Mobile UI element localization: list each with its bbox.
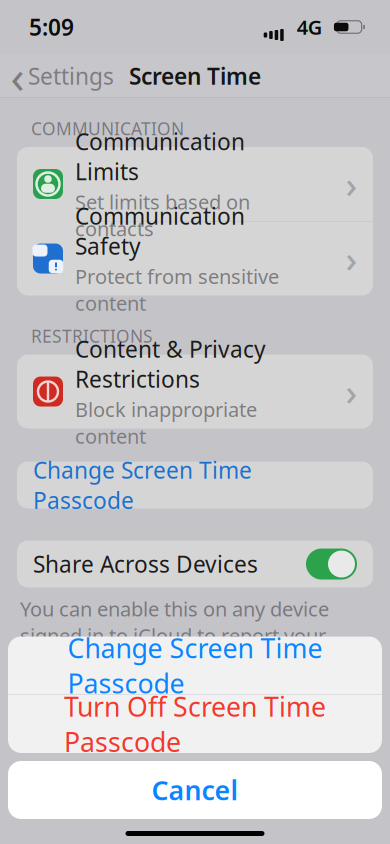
staticText: COMMUNICATION xyxy=(31,117,184,140)
staticText: Block inappropriate content xyxy=(75,396,257,449)
staticText: 4G xyxy=(297,14,323,40)
button[interactable]: Change Screen Time Passcode xyxy=(8,636,382,694)
button[interactable]: ‹ xyxy=(0,54,122,98)
button[interactable]: Cancel xyxy=(8,761,382,819)
staticText: › xyxy=(345,160,357,208)
staticText: › xyxy=(345,368,357,415)
staticText: Content & Privacy Restrictions xyxy=(75,334,266,394)
staticText: Protect from sensitive content xyxy=(75,263,279,316)
staticText: Share Across Devices xyxy=(33,549,258,579)
staticText: RESTRICTIONS xyxy=(31,324,153,347)
staticText: Cancel xyxy=(151,772,238,808)
button[interactable]: Communication Limits xyxy=(17,147,373,221)
staticText: Screen Time xyxy=(129,61,261,91)
staticText: ‹ xyxy=(10,46,24,106)
staticText: Set Up Screen Time for Family xyxy=(33,688,277,748)
button[interactable]: Communication Safety xyxy=(17,221,373,295)
staticText: Change Screen Time Passcode xyxy=(67,630,322,701)
staticText: Settings xyxy=(28,61,114,91)
staticText: Change Screen Time Passcode xyxy=(33,455,252,515)
staticText: Turn Off Screen Time Passcode xyxy=(64,689,326,759)
staticText: Communication Limits xyxy=(75,126,245,187)
staticText: Communication Safety xyxy=(75,201,245,261)
button[interactable]: Set Up Screen Time for Family xyxy=(17,694,373,741)
button[interactable]: Change Screen Time Passcode xyxy=(17,461,373,508)
staticText: 5:09 xyxy=(29,12,74,42)
staticText: › xyxy=(345,235,357,282)
button[interactable]: Share Across Devices xyxy=(17,540,373,587)
button[interactable]: Content & Privacy Restrictions xyxy=(17,354,373,428)
button[interactable]: Turn Off Screen Time Passcode xyxy=(8,695,382,753)
staticText: You can enable this on any device signed… xyxy=(20,595,329,675)
staticText: Set limits based on contacts xyxy=(75,189,250,242)
